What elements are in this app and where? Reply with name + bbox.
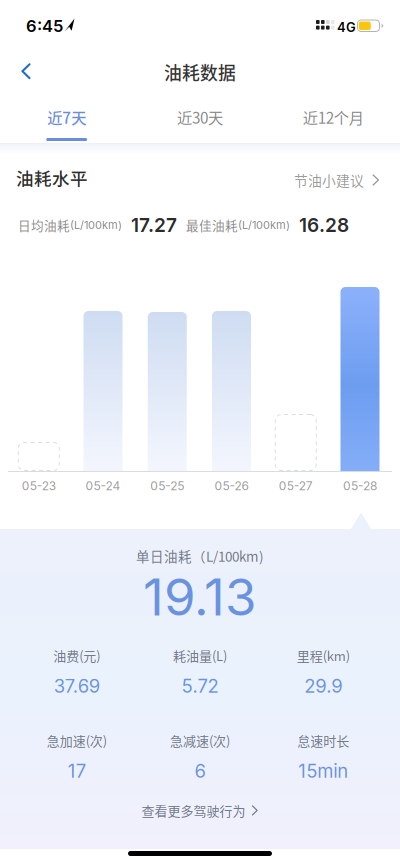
staticText: (L/100km): [70, 218, 122, 232]
staticText: 29.9: [304, 675, 342, 697]
staticText: 05-27: [279, 479, 313, 493]
button[interactable]: 近7天: [0, 104, 133, 150]
staticText: 37.69: [54, 675, 100, 697]
staticText: 05-23: [22, 479, 56, 493]
staticText: 4G: [337, 19, 356, 35]
staticText: 油耗数据: [164, 59, 236, 85]
staticText: 最佳油耗: [186, 216, 238, 234]
staticText: 怠速时长: [297, 731, 349, 750]
staticText: 急减速(次): [170, 731, 230, 750]
staticText: 油耗水平: [16, 165, 88, 190]
staticText: 05-26: [214, 479, 248, 493]
button[interactable]: 查看更多驾驶行为: [131, 793, 268, 828]
staticText: 油费(元): [53, 646, 100, 665]
staticText: (L/100km): [238, 218, 290, 232]
staticText: 15min: [298, 760, 348, 782]
staticText: 近30天: [177, 106, 223, 128]
staticText: 近7天: [47, 106, 86, 128]
staticText: 05-28: [343, 479, 377, 493]
staticText: 6:45: [26, 16, 63, 36]
staticText: 05-24: [85, 479, 120, 493]
button[interactable]: Back: [3, 51, 43, 91]
staticText: 节油小建议: [294, 170, 364, 190]
button[interactable]: 近30天: [133, 104, 267, 150]
staticText: 16.28: [299, 213, 349, 236]
staticText: 17: [68, 760, 86, 782]
button[interactable]: 近12个月: [267, 104, 400, 150]
staticText: 里程(km): [297, 646, 350, 665]
staticText: 19.13: [143, 566, 257, 628]
staticText: 日均油耗: [18, 216, 70, 234]
staticText: 05-25: [150, 479, 184, 493]
staticText: 5.72: [181, 675, 218, 697]
staticText: 查看更多驾驶行为: [141, 801, 245, 820]
staticText: 17.27: [131, 213, 177, 236]
staticText: 耗油量(L): [173, 646, 227, 665]
staticText: 6: [194, 760, 205, 782]
staticText: 急加速(次): [47, 731, 107, 750]
staticText: 单日油耗（L/100km): [136, 546, 264, 565]
button[interactable]: 节油小建议: [286, 162, 388, 198]
staticText: 近12个月: [303, 106, 364, 128]
